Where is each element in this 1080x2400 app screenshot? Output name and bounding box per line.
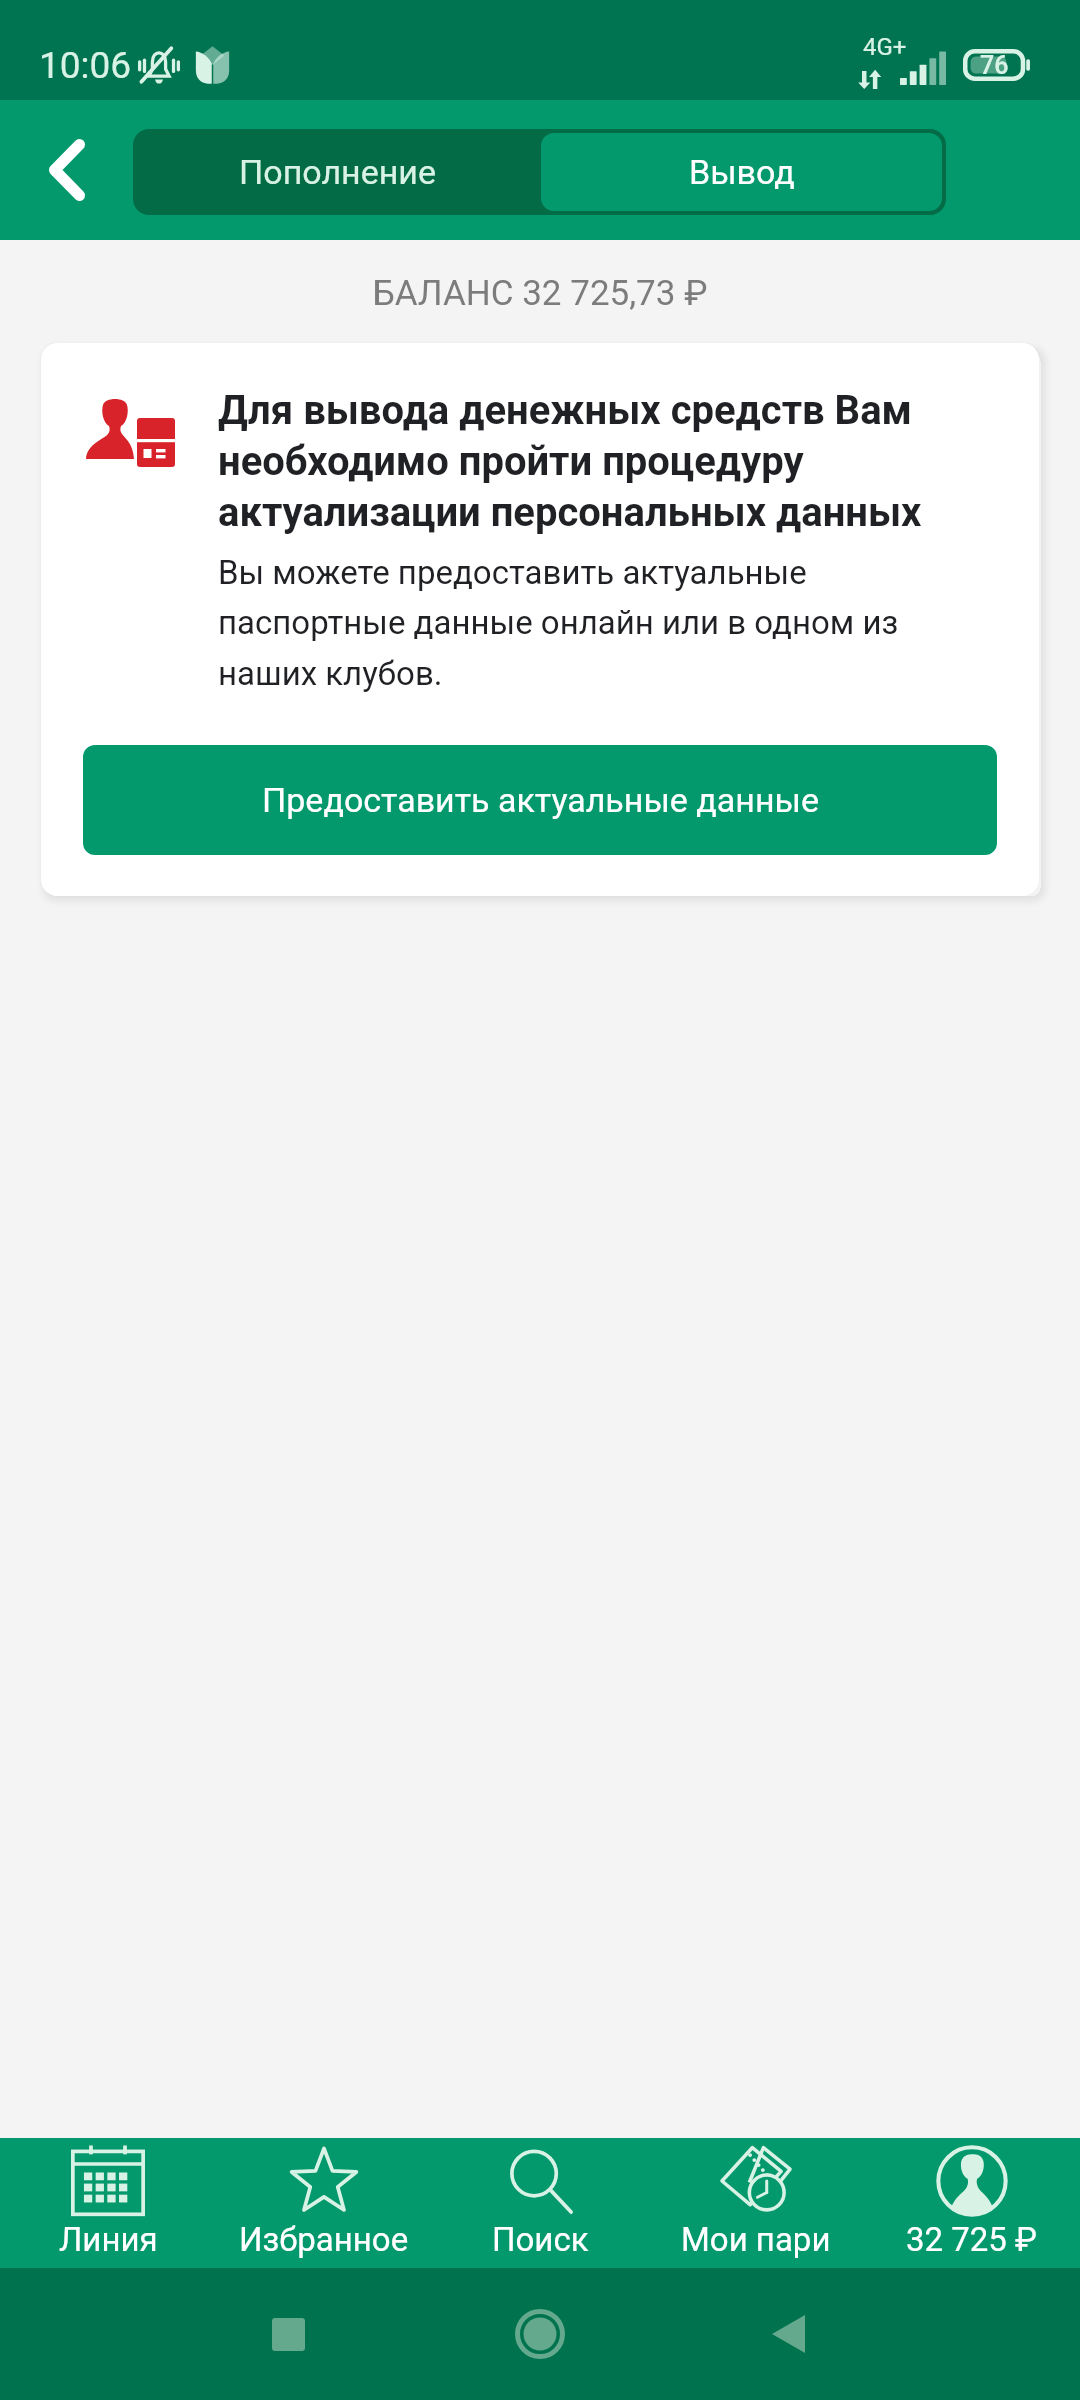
button[interactable]: Вывод [541,133,942,211]
staticText: Вы можете предоставить актуальные паспор… [218,553,958,693]
button[interactable]: Recent apps [240,2286,336,2382]
button[interactable]: Home [492,2286,588,2382]
button[interactable]: Линия [0,2138,216,2268]
staticText: 32 725 ₽ [906,2220,1038,2259]
staticText: 10:06 [39,44,132,87]
staticText: Линия [59,2220,158,2259]
staticText: Мои пари [681,2220,831,2259]
staticText: Пополнение [239,152,436,192]
button[interactable]: Предоставить актуальные данные [83,745,997,855]
button[interactable]: Back [0,100,133,240]
button[interactable]: Поиск [432,2138,648,2268]
button[interactable]: Пополнение [133,129,541,215]
staticText: Предоставить актуальные данные [262,780,819,820]
staticText: Поиск [492,2220,589,2259]
button[interactable]: Избранное [216,2138,432,2268]
staticText: 4G+ [863,33,907,61]
button[interactable]: Back [740,2286,836,2382]
staticText: Избранное [239,2220,409,2259]
button[interactable]: Мои пари [648,2138,864,2268]
staticText: Вывод [689,152,795,192]
button[interactable]: 32 725 ₽ [864,2138,1080,2268]
staticText: Для вывода денежных средств Вам необходи… [218,387,958,536]
staticText: 76 [980,51,1009,80]
staticText: БАЛАНС 32 725,73 ₽ [0,273,1080,314]
